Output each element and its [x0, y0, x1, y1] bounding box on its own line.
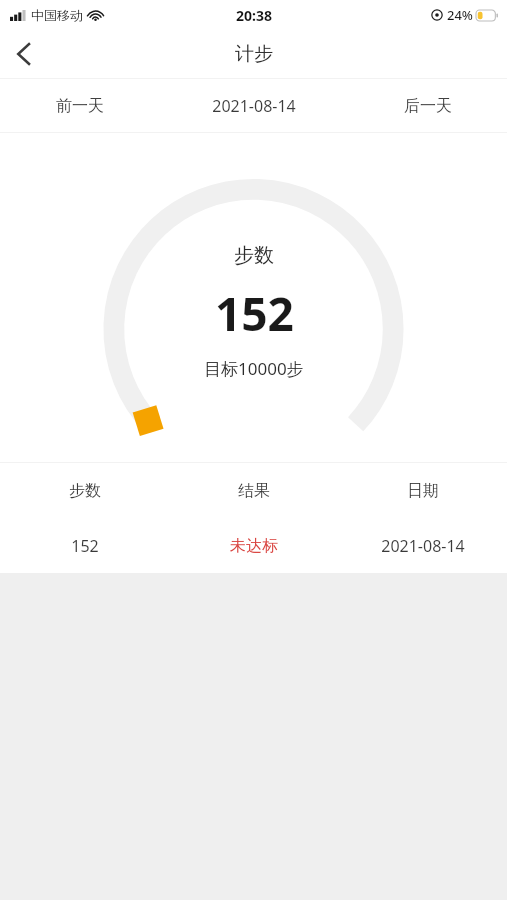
staticText: 24%: [447, 6, 473, 24]
staticText: 后一天: [404, 96, 452, 116]
staticText: 20:38: [236, 6, 272, 25]
button[interactable]: 2021-08-14: [159, 79, 349, 132]
button[interactable]: 152: [0, 518, 507, 573]
staticText: 目标10000步: [204, 357, 304, 380]
staticText: 步数: [234, 243, 274, 268]
staticText: 中国移动: [31, 7, 83, 23]
button[interactable]: 前一天: [0, 79, 159, 132]
button[interactable]: Back: [0, 30, 48, 78]
staticText: 步数: [69, 481, 101, 501]
staticText: 152: [71, 535, 99, 557]
staticText: 计步: [235, 42, 273, 66]
staticText: 152: [215, 282, 294, 345]
staticText: 未达标: [230, 536, 278, 556]
staticText: 前一天: [56, 96, 104, 116]
button[interactable]: 后一天: [349, 79, 507, 132]
staticText: 2021-08-14: [212, 95, 296, 117]
staticText: 日期: [407, 481, 439, 501]
staticText: 结果: [238, 481, 270, 501]
staticText: 2021-08-14: [381, 535, 465, 557]
